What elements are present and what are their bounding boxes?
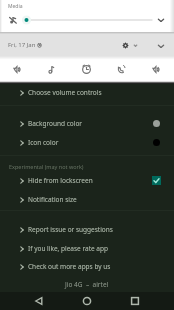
button[interactable]: Media volume <box>0 13 174 27</box>
button[interactable]: Background color <box>0 114 174 133</box>
button[interactable]: Report issue or suggestions <box>0 220 174 239</box>
button[interactable]: If you like, please rate app <box>0 239 174 258</box>
button[interactable]: Icon color <box>0 133 174 152</box>
staticText: If you like, please rate app <box>28 244 109 253</box>
button[interactable]: Check out more apps by us <box>0 257 174 276</box>
button[interactable]: Back <box>30 292 48 310</box>
button[interactable]: Mute media <box>4 11 21 28</box>
staticText: Hide from lockscreen <box>28 176 93 185</box>
button[interactable]: Call volume <box>104 59 139 79</box>
staticText: Jio 4G – airtel <box>65 280 109 289</box>
staticText: Media <box>8 3 23 10</box>
button[interactable]: Expand quick settings <box>152 37 169 54</box>
staticText: Choose volume controls <box>28 88 102 97</box>
staticText: Experimental (may not work) <box>9 163 84 170</box>
staticText: Background color <box>28 119 83 128</box>
staticText: Check out more apps by us <box>28 262 111 271</box>
staticText: Notification size <box>28 195 77 204</box>
staticText: Icon color <box>28 138 59 147</box>
button[interactable]: Alarm volume <box>69 59 104 79</box>
button[interactable]: Notification size <box>0 190 174 209</box>
button[interactable]: Ring volume <box>0 59 34 79</box>
button[interactable]: Media volume <box>139 59 174 79</box>
button[interactable]: Music volume <box>34 59 69 79</box>
button[interactable]: Settings <box>117 37 133 53</box>
staticText: Report issue or suggestions <box>28 225 113 234</box>
button[interactable]: Choose volume controls <box>0 83 174 102</box>
staticText: Fri, 17 Jan <box>8 41 36 49</box>
button[interactable]: Expand <box>152 11 169 28</box>
button[interactable]: Home <box>78 292 96 310</box>
button[interactable]: Recents <box>126 292 144 310</box>
button[interactable]: Hide from lockscreen <box>0 171 174 190</box>
